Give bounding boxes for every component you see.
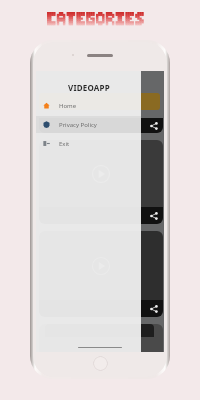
staticText: Privacy Policy bbox=[59, 121, 97, 129]
button[interactable]: Share bbox=[150, 122, 158, 130]
staticText: Home bbox=[59, 102, 77, 110]
button[interactable]: Home bbox=[36, 97, 141, 114]
button[interactable]: Exit bbox=[36, 135, 141, 152]
staticText: VIDEOAPP bbox=[68, 82, 110, 93]
staticText: Exit bbox=[59, 140, 70, 148]
button[interactable]: Share bbox=[150, 212, 158, 220]
button[interactable]: Privacy Policy bbox=[36, 116, 141, 133]
button[interactable]: Share bbox=[150, 305, 158, 313]
